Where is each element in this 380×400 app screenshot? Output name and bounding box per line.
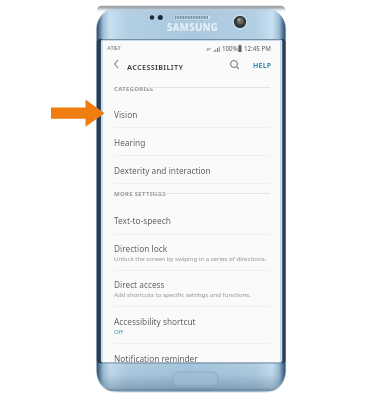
staticText: Accessibility shortcut bbox=[114, 316, 196, 327]
button[interactable]: Hearing bbox=[103, 128, 280, 156]
staticText: HELP bbox=[253, 61, 272, 71]
staticText: ACCESSIBILITY bbox=[127, 62, 184, 72]
staticText: Hearing bbox=[114, 137, 146, 148]
staticText: Unlock the screen by swiping in a series… bbox=[114, 254, 267, 262]
staticText: Direction lock bbox=[114, 243, 168, 254]
staticText: Dexterity and interaction bbox=[114, 165, 211, 176]
button[interactable]: Direct access bbox=[103, 270, 280, 307]
staticText: Vision bbox=[114, 109, 138, 120]
button[interactable]: Text-to-speech bbox=[103, 206, 280, 235]
button[interactable]: HELP bbox=[250, 57, 275, 75]
staticText: Direct access bbox=[114, 279, 165, 290]
button[interactable]: Notification reminder bbox=[103, 344, 280, 370]
button[interactable]: Direction lock bbox=[103, 234, 280, 271]
staticText: Text-to-speech bbox=[114, 215, 171, 226]
staticText: CATEGORIES bbox=[114, 85, 154, 93]
staticText: MORE SETTINGS bbox=[114, 190, 166, 198]
button[interactable]: Dexterity and interaction bbox=[103, 156, 280, 184]
staticText: SAMSUNG bbox=[167, 21, 219, 34]
staticText: 12:45 PM bbox=[244, 44, 271, 52]
button[interactable]: Accessibility shortcut bbox=[103, 307, 280, 344]
button[interactable]: Search bbox=[226, 56, 244, 74]
staticText: Notification reminder bbox=[114, 353, 198, 364]
staticText: Add shortcuts to specific settings and f… bbox=[114, 290, 251, 298]
button[interactable]: Back bbox=[107, 55, 125, 73]
staticText: 100% bbox=[222, 44, 238, 52]
button[interactable]: Vision bbox=[103, 100, 280, 128]
staticText: AT&T bbox=[107, 44, 121, 52]
staticText: Off bbox=[114, 327, 123, 335]
